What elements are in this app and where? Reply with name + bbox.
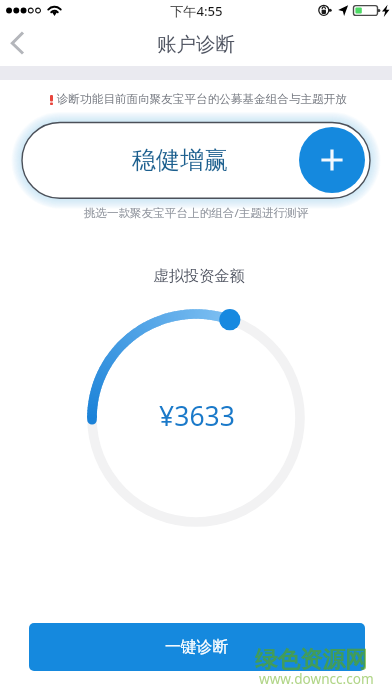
staticText: 稳健增赢 [132, 145, 228, 175]
staticText: 一键诊断 [165, 637, 229, 657]
staticText: ¥3633 [1, 398, 392, 434]
staticText: www.downcc.com [259, 669, 374, 688]
button[interactable]: Add [299, 127, 365, 193]
staticText: 账户诊断 [157, 32, 235, 57]
button[interactable]: 一键诊断 [29, 623, 365, 671]
staticText: 挑选一款聚友宝平台上的组合/主题进行测评 [0, 205, 392, 221]
button[interactable]: 稳健增赢 [22, 123, 370, 199]
staticText: 虚拟投资金额 [3, 266, 392, 285]
staticText: 绿色资源网 [255, 645, 368, 673]
button[interactable]: Back [0, 22, 44, 66]
staticText: 下午4:55 [170, 2, 223, 20]
staticText: 诊断功能目前面向聚友宝平台的公募基金组合与主题开放 [57, 92, 347, 107]
